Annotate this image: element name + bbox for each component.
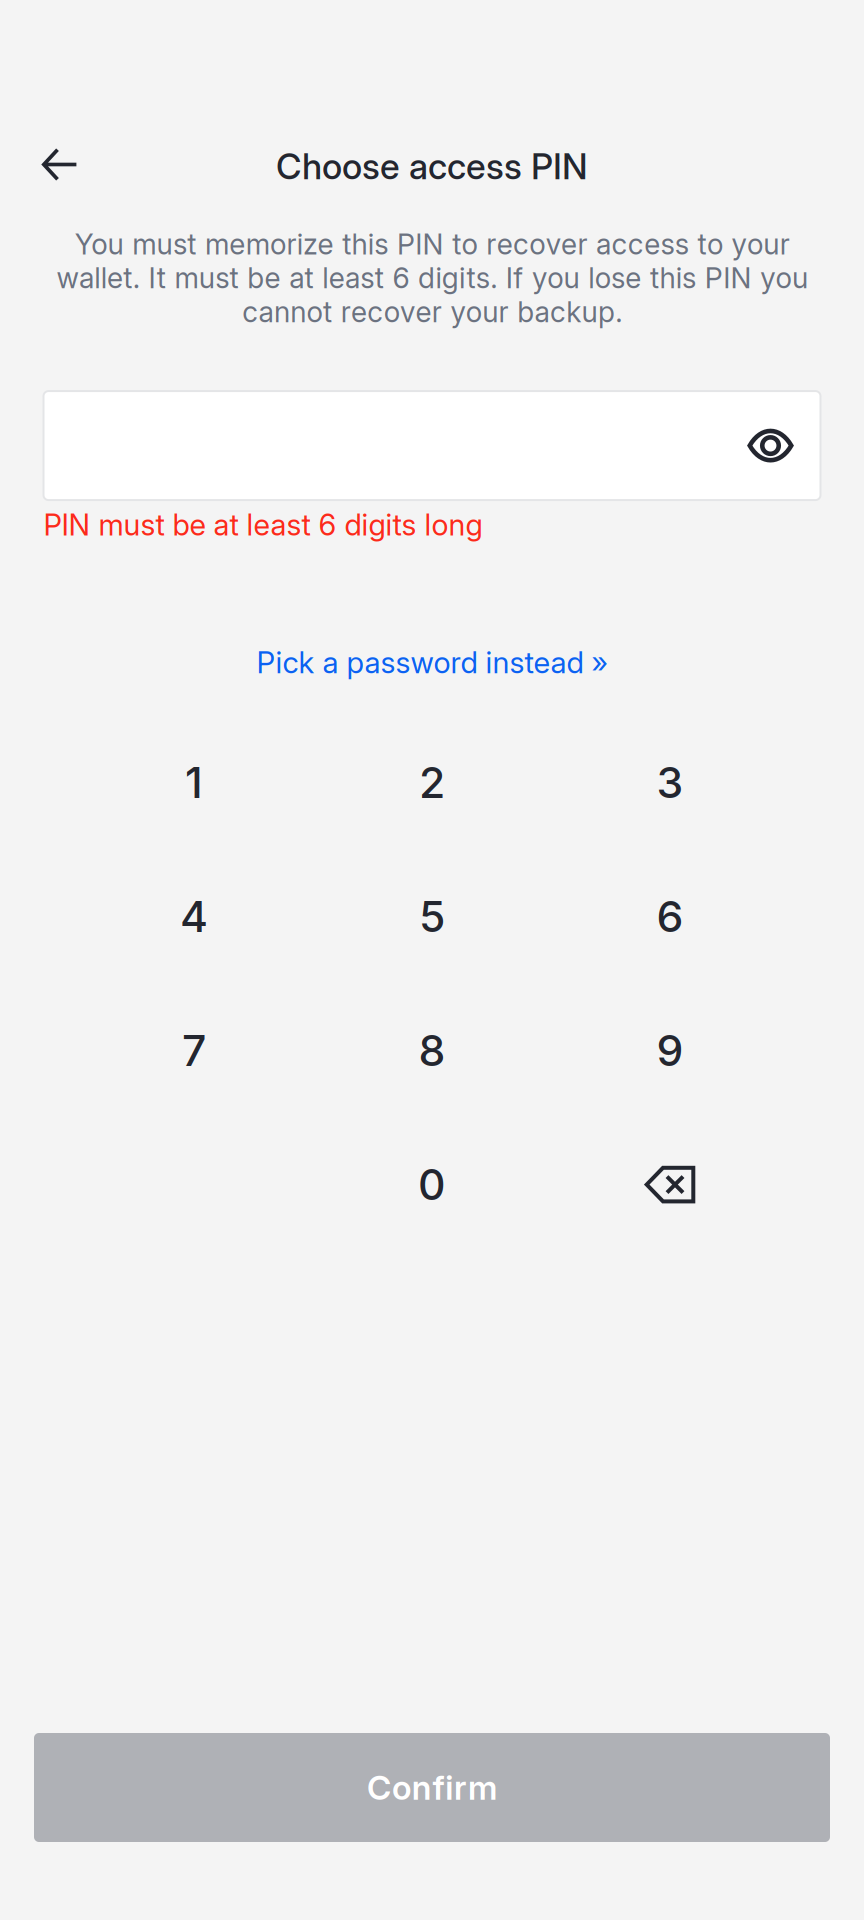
button[interactable]: 0 <box>313 1118 551 1252</box>
button[interactable]: 4 <box>75 850 313 984</box>
button[interactable]: 7 <box>75 984 313 1118</box>
button[interactable]: 1 <box>75 716 313 850</box>
staticText: 0 <box>418 1159 446 1210</box>
staticText: 2 <box>419 757 445 808</box>
staticText: Pick a password instead » <box>256 645 607 680</box>
staticText: 6 <box>656 891 683 942</box>
button[interactable]: Show PIN <box>747 430 820 462</box>
button[interactable]: 6 <box>551 850 789 984</box>
staticText: Choose access PIN <box>276 145 588 188</box>
staticText: Confirm <box>367 1767 497 1808</box>
staticText: 7 <box>182 1025 206 1076</box>
button[interactable]: 2 <box>313 716 551 850</box>
button[interactable]: Pick a password instead » <box>256 640 607 686</box>
staticText: 4 <box>180 891 208 942</box>
staticText: 9 <box>656 1025 683 1076</box>
button[interactable]: Confirm <box>34 1733 830 1842</box>
staticText: PIN must be at least 6 digits long <box>43 507 482 543</box>
staticText: You must memorize this PIN to recover ac… <box>56 227 808 329</box>
button[interactable]: 8 <box>313 984 551 1118</box>
staticText: 3 <box>656 757 683 808</box>
staticText: 1 <box>185 757 203 808</box>
staticText: 8 <box>418 1025 445 1076</box>
button[interactable]: 3 <box>551 716 789 850</box>
button[interactable]: Delete <box>551 1118 789 1252</box>
staticText: 5 <box>419 891 445 942</box>
button[interactable]: 9 <box>551 984 789 1118</box>
button[interactable]: 5 <box>313 850 551 984</box>
button[interactable]: Back <box>28 133 92 195</box>
